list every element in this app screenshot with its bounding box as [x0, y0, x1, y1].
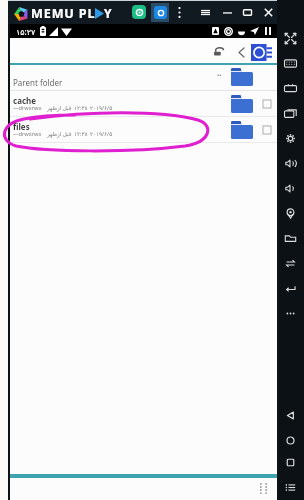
- button[interactable]: Recents: [277, 450, 304, 475]
- staticText: ..: [217, 67, 222, 78]
- staticText: ۲۰۱۹/۶/۵: [90, 130, 113, 138]
- button[interactable]: Settings: [277, 126, 304, 151]
- button[interactable]: File transfer: [277, 226, 304, 251]
- button[interactable]: More: [277, 301, 304, 326]
- button[interactable]: Fullscreen: [277, 26, 304, 51]
- button[interactable]: Task list: [277, 475, 304, 500]
- button[interactable]: Maximize: [240, 4, 255, 21]
- staticText: قبل ازظهر: [47, 130, 72, 138]
- staticText: Parent folder: [13, 77, 63, 88]
- button[interactable]: Unlock: [209, 41, 229, 63]
- button[interactable]: Keyboard: [277, 51, 304, 76]
- button[interactable]: Screenshot: [277, 76, 304, 101]
- button[interactable]: Volume down: [277, 176, 304, 201]
- staticText: Y: [104, 5, 112, 21]
- button[interactable]: Menu: [198, 4, 213, 21]
- button[interactable]: Home: [277, 428, 304, 453]
- button[interactable]: Enter: [277, 276, 304, 301]
- button[interactable]: Parent folder: [10, 65, 277, 91]
- button[interactable]: Select cache: [262, 99, 271, 108]
- button[interactable]: Resize handle: [256, 480, 270, 496]
- button[interactable]: Multi window: [277, 101, 304, 126]
- button[interactable]: cache: [10, 91, 277, 117]
- staticText: ۱۲:۳۸: [74, 104, 88, 112]
- staticText: ۱۵:۲۷: [16, 26, 36, 37]
- button[interactable]: More options: [175, 5, 184, 20]
- button[interactable]: Sync: [277, 251, 304, 276]
- button[interactable]: Minimize: [220, 4, 235, 21]
- button[interactable]: Location: [277, 201, 304, 226]
- staticText: cache: [13, 95, 37, 106]
- button[interactable]: Back: [232, 41, 250, 63]
- button[interactable]: Volume up: [277, 151, 304, 176]
- button[interactable]: Back: [277, 403, 304, 428]
- staticText: files: [13, 121, 30, 132]
- button[interactable]: Close: [261, 4, 276, 21]
- staticText: ۱۲:۳۸: [74, 130, 88, 138]
- button[interactable]: Device settings: [251, 41, 274, 63]
- staticText: —drwxrwx: [13, 130, 42, 138]
- button[interactable]: Select files: [262, 125, 271, 134]
- button[interactable]: Camera app: [154, 6, 167, 19]
- staticText: MEMU PL: [31, 5, 96, 22]
- staticText: ۲۰۱۹/۶/۵: [90, 104, 113, 112]
- button[interactable]: Green app: [132, 5, 146, 19]
- staticText: —drwxrwx: [13, 104, 42, 112]
- staticText: قبل ازظهر: [47, 104, 72, 112]
- button[interactable]: files: [10, 117, 277, 143]
